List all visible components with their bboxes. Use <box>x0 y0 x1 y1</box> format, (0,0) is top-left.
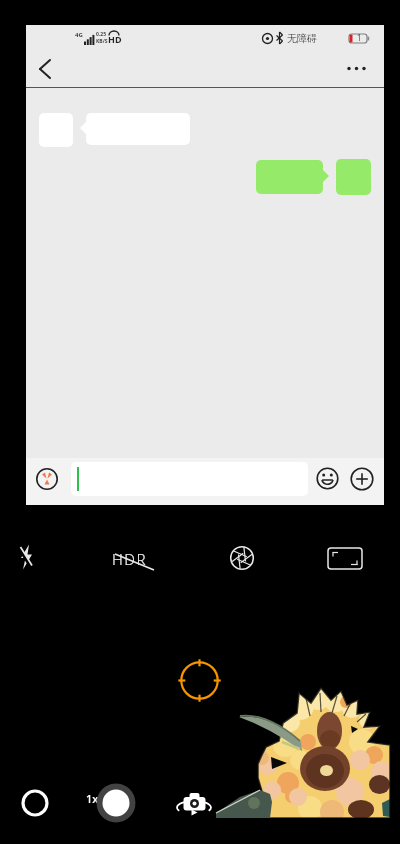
button[interactable] <box>316 467 339 490</box>
button[interactable]: HDR <box>109 546 161 574</box>
button[interactable] <box>16 540 38 574</box>
button[interactable] <box>36 468 58 490</box>
button[interactable] <box>71 462 308 496</box>
staticText: KB/S <box>96 38 108 45</box>
staticText: 0.25 <box>96 31 106 38</box>
staticText: 1 <box>357 32 362 43</box>
button[interactable] <box>340 55 376 81</box>
button[interactable] <box>30 53 64 83</box>
button[interactable]: 1x <box>86 791 99 806</box>
button[interactable] <box>21 789 49 817</box>
button[interactable] <box>326 545 364 572</box>
button[interactable] <box>96 783 136 823</box>
button[interactable] <box>256 160 323 194</box>
button[interactable] <box>350 467 374 491</box>
staticText: 无障碍 <box>287 32 317 45</box>
button[interactable] <box>174 788 214 818</box>
button[interactable] <box>228 544 256 572</box>
staticText: HDR <box>112 549 147 569</box>
staticText: 4G <box>75 31 83 39</box>
staticText: HD <box>108 33 122 45</box>
